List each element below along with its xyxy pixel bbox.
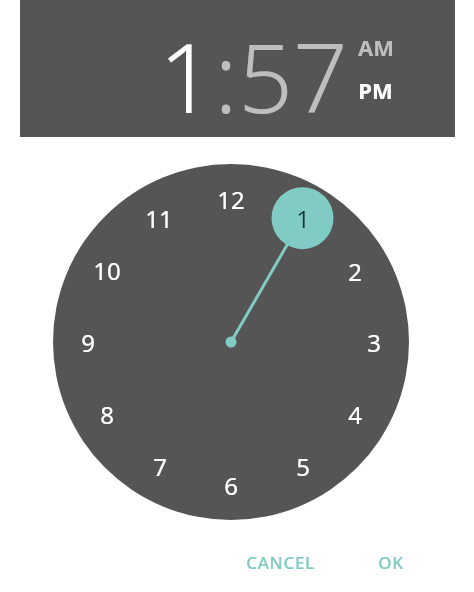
button[interactable]: 3 bbox=[351, 319, 397, 365]
button[interactable]: 11 bbox=[136, 195, 182, 241]
button[interactable]: 2 bbox=[332, 248, 378, 294]
staticText: 7 bbox=[153, 450, 167, 483]
staticText: 11 bbox=[145, 202, 173, 235]
button[interactable]: 9 bbox=[65, 319, 111, 365]
button[interactable]: 6 bbox=[208, 462, 254, 508]
button[interactable]: 5 bbox=[280, 443, 326, 489]
staticText: AM bbox=[358, 32, 394, 62]
staticText: 1 bbox=[296, 202, 310, 235]
button[interactable]: 57 bbox=[238, 10, 348, 120]
button[interactable]: 1 bbox=[280, 195, 326, 241]
staticText: 12 bbox=[217, 183, 245, 216]
button[interactable]: 4 bbox=[332, 391, 378, 437]
staticText: : bbox=[214, 10, 238, 120]
staticText: 5 bbox=[296, 450, 310, 483]
button[interactable]: CANCEL bbox=[230, 543, 330, 581]
staticText: 4 bbox=[348, 398, 362, 431]
button[interactable]: OK bbox=[367, 543, 415, 581]
staticText: 3 bbox=[367, 326, 381, 359]
staticText: OK bbox=[378, 551, 404, 574]
staticText: 57 bbox=[238, 10, 348, 120]
button[interactable]: AM bbox=[358, 30, 420, 64]
staticText: 9 bbox=[81, 326, 95, 359]
staticText: PM bbox=[358, 75, 393, 105]
staticText: 1 bbox=[159, 10, 214, 120]
button[interactable]: 7 bbox=[137, 443, 183, 489]
button[interactable]: 8 bbox=[84, 391, 130, 437]
staticText: 8 bbox=[100, 398, 114, 431]
button[interactable]: Clock face, select hour bbox=[53, 164, 409, 520]
staticText: 2 bbox=[348, 255, 362, 288]
button[interactable]: 1 bbox=[159, 10, 214, 120]
button[interactable]: 12 bbox=[208, 176, 254, 222]
staticText: CANCEL bbox=[246, 551, 315, 574]
staticText: 10 bbox=[93, 254, 121, 287]
staticText: 6 bbox=[224, 469, 238, 502]
button[interactable]: PM bbox=[358, 73, 420, 107]
button[interactable]: 10 bbox=[84, 247, 130, 293]
